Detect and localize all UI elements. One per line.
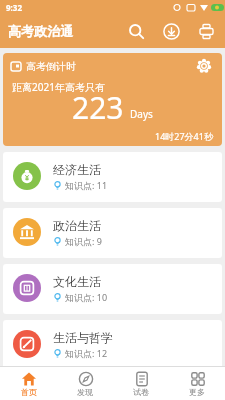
button[interactable]: 政治生活 <box>3 208 222 258</box>
button[interactable] <box>196 58 212 74</box>
button[interactable] <box>121 16 151 46</box>
staticText: 高考倒计时 <box>26 60 76 73</box>
button[interactable]: 经济生活 <box>3 152 222 202</box>
staticText: 知识点: 9 <box>65 235 102 247</box>
staticText: 223 <box>72 87 124 128</box>
button[interactable] <box>156 16 186 46</box>
staticText: 经济生活 <box>53 162 101 177</box>
staticText: 发现 <box>77 387 93 397</box>
staticText: 距离2021年高考只有 <box>12 80 105 94</box>
staticText: 高考政治通 <box>8 23 73 39</box>
button[interactable]: 发现 <box>57 367 113 400</box>
button[interactable]: 生活与哲学 <box>3 320 222 370</box>
staticText: 更多 <box>189 387 205 397</box>
staticText: 知识点: 12 <box>65 347 108 359</box>
button[interactable] <box>191 16 221 46</box>
staticText: 14时27分41秒 <box>155 130 213 142</box>
staticText: 9:32 <box>6 2 22 13</box>
button[interactable]: 更多 <box>169 367 225 400</box>
staticText: 试卷 <box>133 387 149 397</box>
staticText: Days <box>130 107 153 121</box>
staticText: 生活与哲学 <box>53 330 113 345</box>
staticText: 知识点: 10 <box>65 291 108 303</box>
staticText: 政治生活 <box>53 218 101 233</box>
button[interactable]: 试卷 <box>113 367 169 400</box>
staticText: 文化生活 <box>53 274 101 289</box>
button[interactable]: 高考倒计时 <box>3 53 222 146</box>
staticText: 首页 <box>21 387 37 397</box>
staticText: 知识点: 11 <box>65 179 108 191</box>
button[interactable]: 首页 <box>0 367 57 400</box>
button[interactable]: 文化生活 <box>3 264 222 314</box>
